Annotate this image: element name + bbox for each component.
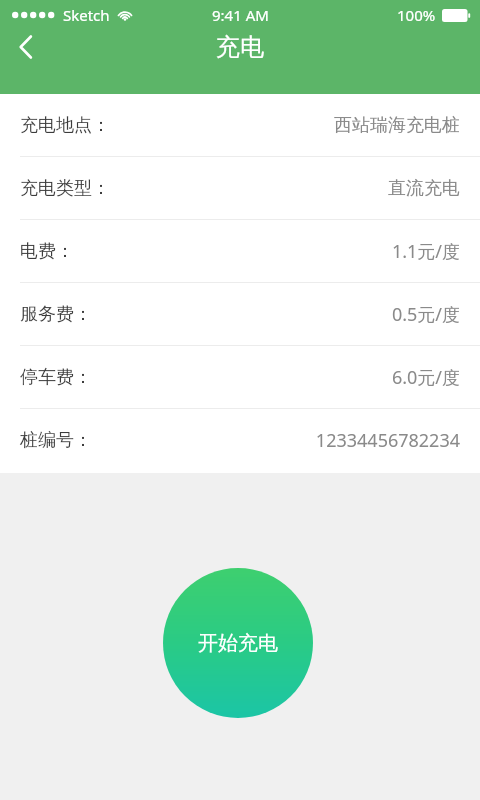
button[interactable]: 停车费： [0,346,480,409]
button[interactable]: 电费： [0,220,480,283]
staticText: 电费： [20,240,74,263]
staticText: 直流充电 [388,177,460,200]
staticText: 服务费： [20,303,92,326]
button[interactable]: 服务费： [0,283,480,346]
staticText: 充电地点： [20,114,110,137]
button[interactable]: 开始充电 [163,568,313,718]
staticText: 充电类型： [20,177,110,200]
staticText: 6.0元/度 [391,365,460,390]
staticText: 桩编号： [20,429,92,452]
staticText: 充电 [216,32,264,62]
staticText: 0.5元/度 [391,302,460,327]
button[interactable]: 桩编号： [0,409,480,472]
staticText: 12334456782234 [315,428,460,453]
staticText: 停车费： [20,366,92,389]
staticText: Sketch [63,5,110,25]
staticText: 9:41 AM [212,5,269,25]
staticText: 1.1元/度 [391,239,460,264]
staticText: 100% [397,5,436,25]
staticText: 开始充电 [198,631,278,656]
button[interactable]: Back [0,30,52,64]
button[interactable]: 充电地点： [0,94,480,157]
button[interactable]: 充电类型： [0,157,480,220]
staticText: 西站瑞海充电桩 [334,114,460,137]
